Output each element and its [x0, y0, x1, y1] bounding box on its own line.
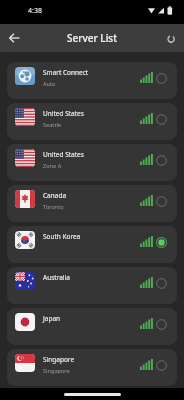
button[interactable]: Canada	[7, 185, 177, 222]
button[interactable]: Smart Connect	[7, 62, 177, 99]
staticText: United States	[43, 109, 84, 118]
staticText: Australia	[43, 273, 70, 282]
staticText: Toronto	[43, 203, 64, 211]
button[interactable]: United States	[7, 103, 177, 140]
staticText: Japan	[43, 314, 61, 323]
button[interactable]: Australia	[7, 267, 177, 304]
button[interactable]: United States	[7, 144, 177, 181]
staticText: United States	[43, 150, 84, 159]
staticText: Smart Connect	[43, 68, 89, 77]
button[interactable]: Japan	[7, 308, 177, 345]
staticText: 4:38	[28, 6, 42, 16]
button[interactable]: South Korea	[7, 226, 177, 263]
button[interactable]: Singapore	[7, 349, 177, 386]
staticText: Zone A	[43, 162, 62, 170]
staticText: Singapore	[43, 367, 70, 375]
staticText: Canada	[43, 191, 67, 200]
button[interactable]	[165, 33, 176, 44]
staticText: Singapore	[43, 355, 75, 364]
staticText: Server List	[67, 31, 118, 45]
button[interactable]	[6, 30, 22, 46]
staticText: Seattle	[43, 121, 62, 129]
staticText: South Korea	[43, 232, 81, 241]
staticText: Auto	[43, 80, 56, 88]
